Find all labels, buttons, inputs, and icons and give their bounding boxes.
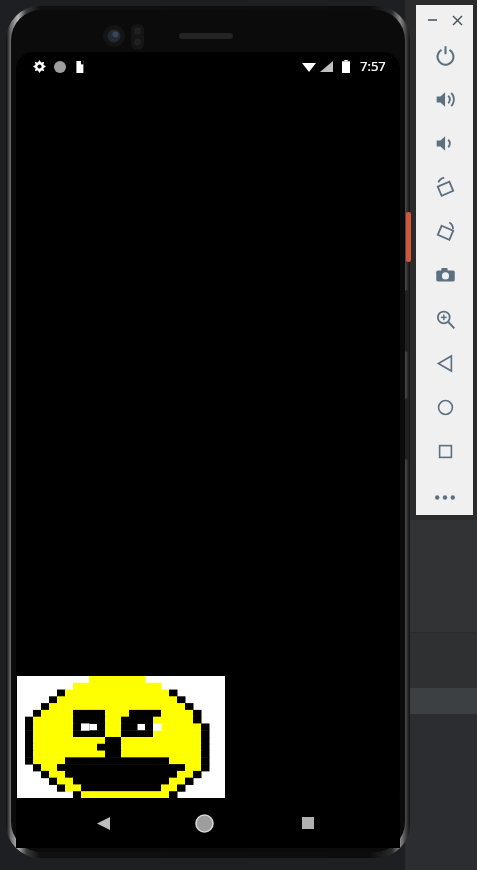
button[interactable]: Volume up (423, 77, 467, 121)
button[interactable]: Take screenshot (423, 253, 467, 297)
button[interactable]: Recent apps (291, 806, 325, 840)
other: Signal (320, 61, 333, 72)
button[interactable]: Back (423, 341, 467, 385)
other: Power button (406, 212, 411, 262)
button[interactable]: Home (423, 385, 467, 429)
button[interactable]: Back (86, 806, 120, 840)
other: Battery (342, 60, 350, 73)
button[interactable]: More options (427, 479, 463, 515)
button[interactable]: Overview (423, 429, 467, 473)
button[interactable]: Home (187, 806, 221, 840)
staticText: 7:57 (360, 57, 386, 75)
button[interactable]: Volume down (423, 121, 467, 165)
other: Wi-Fi (302, 61, 316, 72)
button[interactable]: Rotate right (423, 209, 467, 253)
button[interactable]: Zoom (423, 297, 467, 341)
button[interactable]: Close (449, 12, 465, 28)
other: SD card (74, 61, 86, 73)
button[interactable]: Minimize (424, 12, 440, 28)
other: Settings (33, 60, 46, 73)
button[interactable]: Rotate left (423, 165, 467, 209)
button[interactable]: Power (423, 33, 467, 77)
button[interactable] (17, 676, 225, 798)
